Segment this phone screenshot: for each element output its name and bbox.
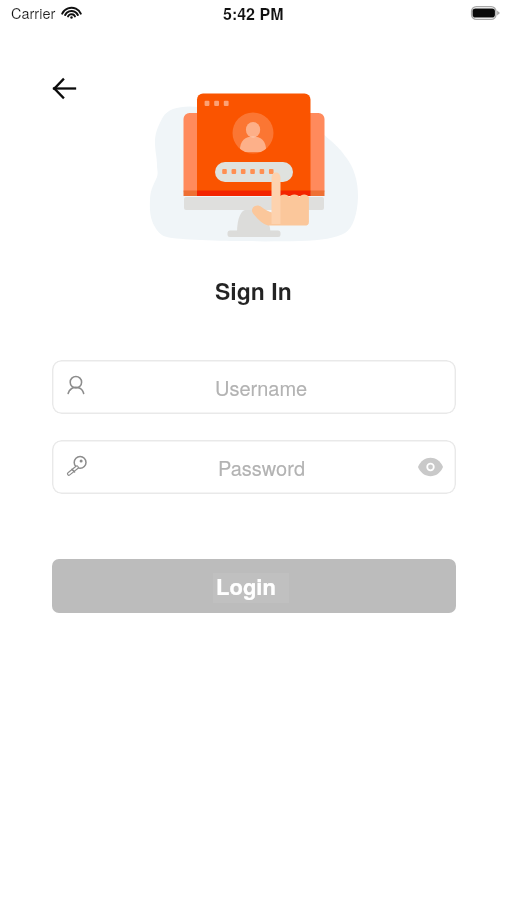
staticText: Password <box>218 453 305 482</box>
button[interactable]: Show password <box>416 454 444 480</box>
button[interactable]: Back <box>43 67 85 109</box>
staticText: Username <box>215 373 308 402</box>
staticText: Sign In <box>215 274 292 307</box>
button[interactable]: Login <box>52 559 456 613</box>
staticText: Login <box>216 570 276 602</box>
staticText: Carrier <box>11 2 56 23</box>
button[interactable]: Password <box>52 440 456 494</box>
staticText: 5:42 PM <box>223 2 284 25</box>
button[interactable]: Username <box>52 360 456 414</box>
